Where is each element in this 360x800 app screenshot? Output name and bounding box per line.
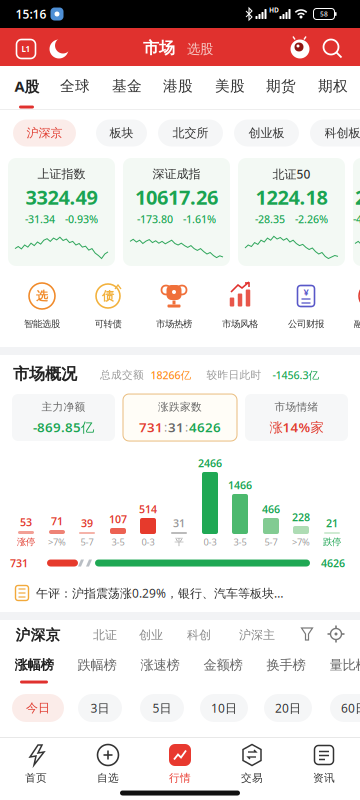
button[interactable]: 市场情绪 [245,394,348,441]
button[interactable]: 首页 [0,738,72,792]
button[interactable]: 市场热榜 [141,279,207,335]
button[interactable]: 资讯 [288,738,360,792]
staticText: 3324.49 [25,184,97,210]
button[interactable]: 今日 [12,694,64,722]
staticText: 228 [292,510,310,524]
staticText: 金额榜 [203,657,242,673]
staticText: -31.34 [25,212,55,226]
button[interactable]: 60日 [330,694,360,722]
button[interactable]: 融资融券 [339,279,360,335]
staticText: 跌幅榜 [77,657,116,673]
button[interactable]: 涨幅榜 [7,650,61,680]
staticText: -869.85亿 [33,418,94,436]
button[interactable]: 美股 [208,68,252,104]
staticText: 731 [139,418,163,436]
staticText: 债 [102,289,114,303]
staticText: -1456.3亿 [272,368,319,382]
button[interactable]: 行情 [144,738,216,792]
staticText: 60日 [341,700,360,716]
staticText: 板块 [109,126,133,140]
button[interactable]: 沪深京 [8,621,68,649]
button[interactable]: 深证成指 [123,158,230,266]
staticText: -1.61% [183,212,216,226]
staticText: 公司财报 [288,318,324,330]
button[interactable]: 涨跌家数 [123,394,237,441]
button[interactable]: 10日 [200,694,248,722]
button[interactable]: 市场风格 [207,279,273,335]
staticText: 涨停 [17,536,35,548]
button[interactable]: 北交所 [158,119,223,146]
button[interactable]: 期权 [311,68,355,104]
button[interactable]: 盯盘机器人 [288,36,312,62]
staticText: 4626 [321,556,345,570]
staticText: 智能选股 [24,318,60,330]
button[interactable]: ¥ [273,279,339,335]
button[interactable]: 创业板 [234,119,299,146]
staticText: 深证成指 [152,167,200,181]
staticText: 0-3 [203,536,216,548]
staticText: 53 [20,515,32,529]
button[interactable]: 全球 [53,68,97,104]
button[interactable]: 量比榜 [322,650,360,680]
staticText: 跌停 [323,536,341,548]
staticText: 港股 [163,77,193,95]
staticText: 主力净额 [41,400,85,413]
button[interactable]: A股 [5,68,49,104]
staticText: 行情 [169,771,191,784]
button[interactable]: 上证指数 [8,158,115,266]
staticText: 市场概况 [13,364,77,384]
staticText: 首页 [25,771,47,784]
button[interactable]: 北证50 [238,158,345,266]
button[interactable]: 跌幅榜 [70,650,124,680]
staticText: 今日 [26,701,50,715]
button[interactable]: 夜间模式 [47,37,71,61]
staticText: 平 [174,536,183,548]
staticText: 自选 [97,771,119,784]
staticText: 美股 [215,77,245,95]
button[interactable]: 创业 [131,621,171,649]
button[interactable]: 港股 [156,68,200,104]
button[interactable]: 午评：沪指震荡涨0.29%，银行、汽车等板块… [0,576,360,612]
staticText: 午评：沪指震荡涨0.29%，银行、汽车等板块… [36,585,283,601]
button[interactable]: 涨速榜 [133,650,187,680]
button[interactable]: 沪深京 [13,119,76,146]
button[interactable]: Level-1 行情 [14,37,38,61]
button[interactable]: 科创 [179,621,219,649]
staticText: 0-3 [141,536,154,548]
button[interactable]: 选 [9,279,75,335]
button[interactable]: 板块 [96,119,147,146]
button[interactable]: 债 [75,279,141,335]
button[interactable]: 金额榜 [196,650,250,680]
button[interactable]: 20日 [264,694,312,722]
button[interactable]: 北证 [85,621,125,649]
button[interactable]: 搜索 [321,37,345,61]
button[interactable]: 选股 [180,34,220,64]
button[interactable]: 期货 [259,68,303,104]
staticText: : [185,419,188,435]
staticText: 期货 [266,77,296,95]
button[interactable]: 沪深主 [232,621,282,649]
staticText: 科创板 [324,126,360,140]
button[interactable]: 基金 [105,68,149,104]
staticText: 31 [168,418,184,436]
staticText: -173.80 [137,212,173,226]
button[interactable]: 科创板 [310,119,360,146]
button[interactable]: 5日 [140,694,184,722]
button[interactable]: 主力净额 [12,394,115,441]
staticText: 107 [109,512,127,526]
button[interactable]: 筛选 [301,628,312,640]
button[interactable]: 21636.94 [353,158,360,266]
staticText: 创业 [139,628,163,642]
staticText: HD [269,6,279,14]
staticText: 北证50 [272,166,310,182]
button[interactable]: 换手榜 [259,650,313,680]
staticText: : [164,419,167,435]
staticText: 基金 [112,77,142,95]
staticText: 总成交额 [100,368,144,381]
button[interactable]: 3日 [78,694,122,722]
button[interactable]: 自选 [72,738,144,792]
staticText: L1 [21,44,30,54]
staticText: 39 [81,516,93,530]
button[interactable]: 设置 [327,625,345,643]
button[interactable]: 交易 [216,738,288,792]
